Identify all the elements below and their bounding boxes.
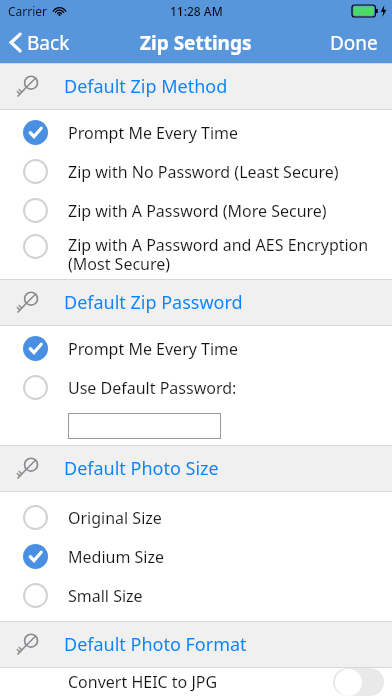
staticText: Zip with A Password (More Secure) [68,200,327,222]
staticText: Back [27,30,70,56]
button[interactable]: Small Size [0,576,392,615]
button[interactable]: Zip with A Password and AES Encryption (… [0,230,392,279]
button[interactable]: Original Size [0,498,392,537]
button[interactable]: Use Default Password: [0,368,392,407]
button[interactable] [68,413,221,439]
staticText: Use Default Password: [68,377,237,399]
staticText: Carrier [8,3,48,19]
button[interactable]: Zip with A Password (More Secure) [0,191,392,230]
staticText: Done [330,30,378,56]
staticText: Small Size [68,585,143,607]
button[interactable]: Back [0,22,80,63]
staticText: Default Zip Password [64,290,243,315]
button[interactable]: Prompt Me Every Time [0,113,392,152]
staticText: Zip Settings [140,30,252,56]
staticText: Prompt Me Every Time [68,338,239,360]
staticText: 11:28 AM [170,3,223,19]
staticText: Zip with A Password and AES Encryption (… [68,234,369,275]
staticText: Medium Size [68,546,164,568]
button[interactable]: Convert HEIC to JPG [0,668,392,696]
staticText: Original Size [68,507,162,529]
staticText: Zip with No Password (Least Secure) [68,161,339,183]
button[interactable]: Prompt Me Every Time [0,329,392,368]
staticText: Convert HEIC to JPG [68,671,333,693]
staticText: Default Zip Method [64,74,228,99]
button[interactable]: Zip with No Password (Least Secure) [0,152,392,191]
staticText: Prompt Me Every Time [68,122,239,144]
staticText: Default Photo Format [64,632,247,657]
staticText: Default Photo Size [64,456,219,481]
button[interactable]: Done [316,22,392,63]
button[interactable]: Convert HEIC to JPG toggle [333,668,384,696]
button[interactable]: Medium Size [0,537,392,576]
